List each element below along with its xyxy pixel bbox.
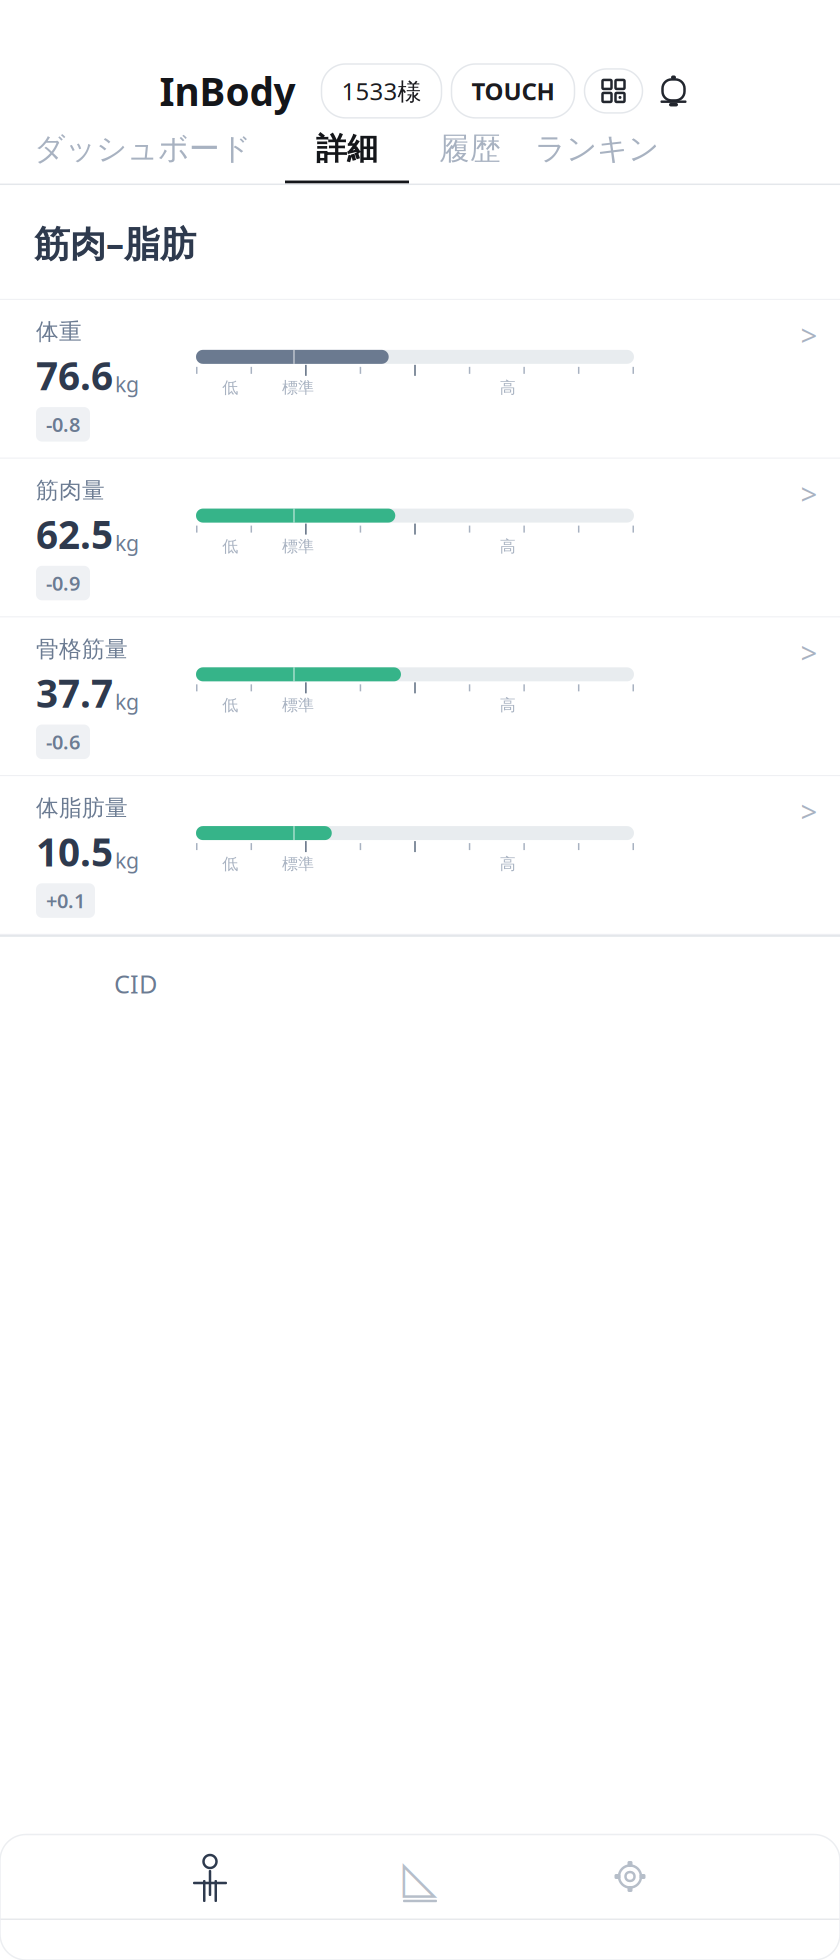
button[interactable]: Notifications	[656, 73, 690, 109]
staticText: ダッシュボード	[34, 130, 251, 168]
button[interactable]: TOUCH	[451, 64, 574, 118]
staticText: +0.1	[46, 887, 85, 914]
staticText: 筋肉量	[36, 477, 105, 504]
staticText: InBody	[159, 65, 295, 117]
staticText: 詳細	[316, 130, 378, 168]
button[interactable]: Settings	[525, 1839, 735, 1913]
staticText: -0.9	[46, 570, 80, 596]
staticText: 低	[222, 537, 238, 556]
staticText: 1533様	[341, 75, 421, 107]
button[interactable]: 体重	[0, 300, 840, 458]
staticText: 高	[500, 695, 516, 715]
button[interactable]: Scan QR code	[584, 69, 642, 113]
staticText: kg	[115, 528, 139, 557]
staticText: 62.5	[36, 508, 113, 560]
staticText: 筋肉–脂肪	[34, 219, 196, 267]
staticText: 低	[222, 695, 238, 715]
staticText: 高	[500, 537, 516, 556]
staticText: 標準	[282, 537, 314, 556]
staticText: >	[800, 315, 817, 354]
staticText: 低	[222, 378, 238, 397]
staticText: 標準	[282, 695, 314, 715]
button[interactable]: Goals	[315, 1839, 525, 1913]
staticText: 高	[500, 854, 516, 874]
staticText: -0.8	[46, 411, 80, 438]
staticText: 体重	[36, 318, 82, 346]
button[interactable]: 骨格筋量	[0, 617, 840, 776]
staticText: TOUCH	[471, 75, 554, 107]
staticText: 体脂肪量	[36, 794, 128, 822]
staticText: kg	[115, 687, 139, 715]
staticText: ランキン	[535, 130, 659, 168]
staticText: >	[800, 633, 817, 672]
staticText: 高	[500, 378, 516, 397]
staticText: 標準	[282, 854, 314, 874]
staticText: 76.6	[36, 350, 113, 401]
staticText: 10.5	[36, 826, 113, 877]
button[interactable]: 1533様	[321, 64, 441, 118]
staticText: CID	[114, 967, 157, 1000]
button[interactable]: ダッシュボード	[34, 130, 251, 184]
staticText: 履歴	[439, 130, 501, 168]
staticText: >	[800, 474, 817, 513]
staticText: ◺	[402, 1851, 437, 1902]
button[interactable]: ランキン	[535, 130, 659, 184]
staticText: >	[800, 792, 817, 831]
button[interactable]: 筋肉量	[0, 459, 840, 617]
staticText: kg	[115, 370, 139, 398]
button[interactable]: 体脂肪量	[0, 776, 840, 935]
staticText: -0.6	[46, 728, 80, 755]
staticText: 骨格筋量	[36, 635, 128, 663]
staticText: 低	[222, 854, 238, 874]
button[interactable]: 詳細	[285, 130, 409, 184]
staticText: 37.7	[36, 667, 113, 718]
staticText: 標準	[282, 378, 314, 397]
button[interactable]: Body	[105, 1839, 315, 1913]
staticText: kg	[115, 846, 139, 874]
button[interactable]: 履歴	[439, 130, 501, 184]
